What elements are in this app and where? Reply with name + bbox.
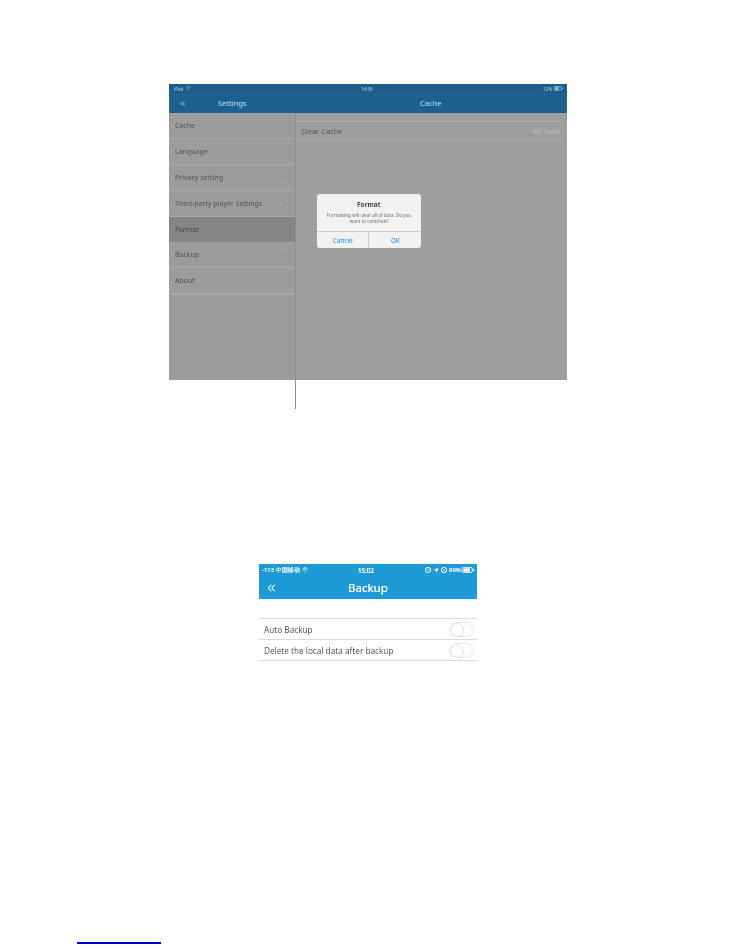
staticText: 69% [449, 566, 461, 574]
staticText: 15:02 [358, 566, 374, 574]
button[interactable]: Auto Backup [259, 619, 477, 639]
staticText: -113 中国移动 [262, 566, 300, 574]
button[interactable]: Privacy setting [169, 165, 295, 190]
button[interactable]: Language [169, 139, 295, 164]
staticText: Backup [348, 580, 388, 596]
staticText: Backup [175, 250, 200, 260]
staticText: 14:39 [361, 86, 373, 92]
staticText: 88.3MB [533, 126, 560, 136]
button[interactable]: Back [174, 95, 190, 111]
button[interactable]: Toggle off [449, 622, 474, 637]
staticText: OK [391, 236, 400, 244]
staticText: Cache [420, 98, 442, 108]
staticText: Clear Cache [301, 126, 343, 136]
staticText: 12% [543, 86, 552, 92]
staticText: Delete the local data after backup [264, 645, 394, 656]
staticText: Settings [218, 98, 247, 108]
staticText: About [175, 276, 195, 286]
button[interactable]: Cache [169, 113, 295, 138]
button[interactable]: Cancel [317, 232, 368, 248]
button[interactable]: Back [262, 579, 280, 597]
button[interactable]: Backup [169, 242, 295, 267]
button[interactable]: Clear Cache [295, 122, 567, 139]
button[interactable]: Toggle off [449, 643, 474, 658]
staticText: Privacy setting [175, 173, 223, 183]
button[interactable]: Format [169, 217, 295, 242]
staticText: Formatting will clear all of data. Do yo… [324, 212, 414, 225]
staticText: Format [175, 225, 199, 235]
button[interactable]: Third-party player Settings [169, 191, 295, 216]
staticText: Cancel [333, 236, 353, 244]
staticText: Cache [175, 121, 195, 131]
staticText: iPad [174, 86, 184, 92]
staticText: Language [175, 147, 208, 157]
staticText: Auto Backup [264, 624, 313, 635]
staticText: Format [357, 200, 381, 209]
button[interactable]: OK [369, 232, 421, 248]
button[interactable]: About [169, 268, 295, 293]
button[interactable]: Delete the local data after backup [259, 640, 477, 660]
staticText: Third-party player Settings [175, 199, 263, 209]
